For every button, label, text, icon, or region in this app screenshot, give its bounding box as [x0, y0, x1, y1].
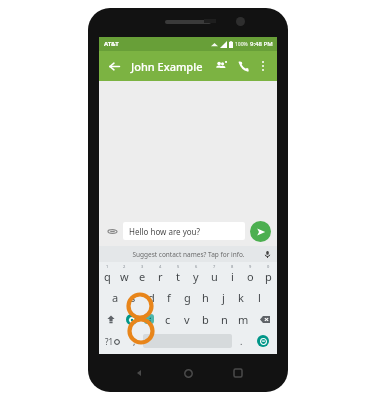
button[interactable]: Enter [249, 330, 277, 352]
button[interactable]: Voice input [262, 249, 272, 259]
button[interactable]: 7 [205, 262, 223, 286]
button[interactable]: 0 [259, 262, 277, 286]
button[interactable]: More options [255, 58, 271, 74]
staticText: 2 [123, 264, 126, 269]
staticText: y [193, 269, 199, 284]
staticText: 3 [141, 264, 144, 269]
button[interactable]: h [196, 286, 214, 308]
staticText: f [167, 290, 171, 305]
staticText: 9 [249, 264, 252, 269]
button[interactable]: m [234, 308, 253, 330]
staticText: o [247, 269, 254, 284]
staticText: Hello how are you? [129, 226, 201, 237]
staticText: k [238, 290, 244, 305]
staticText: d [148, 290, 155, 305]
button[interactable]: Symbols [99, 330, 126, 352]
staticText: e [139, 269, 146, 284]
staticText: 9:48 PM [250, 40, 273, 48]
staticText: n [221, 312, 228, 327]
staticText: p [265, 269, 272, 284]
staticText: , [133, 335, 136, 347]
button[interactable]: 9 [241, 262, 259, 286]
staticText: h [202, 290, 209, 305]
staticText: a [112, 290, 119, 305]
button[interactable]: 3 [133, 262, 151, 286]
staticText: 8 [231, 264, 234, 269]
staticText: 5 [177, 264, 180, 269]
staticText: 6 [195, 264, 198, 269]
staticText: 100% [235, 41, 248, 48]
button[interactable]: Attach [105, 224, 119, 238]
staticText: v [184, 312, 190, 327]
button[interactable]: 1 [99, 262, 116, 286]
staticText: g [184, 290, 191, 305]
button[interactable]: Space [143, 334, 232, 348]
staticText: 1 [106, 264, 109, 269]
staticText: w [120, 269, 129, 284]
button[interactable]: Send [250, 221, 271, 242]
button[interactable]: d [142, 286, 160, 308]
staticText: ?1 [105, 336, 114, 347]
staticText: q [104, 269, 111, 284]
staticText: . [240, 335, 243, 347]
button[interactable]: , [126, 330, 142, 352]
button[interactable]: 6 [187, 262, 205, 286]
staticText: u [211, 269, 218, 284]
staticText: t [176, 269, 180, 284]
button[interactable]: j [214, 286, 232, 308]
staticText: c [165, 312, 171, 327]
staticText: s [130, 290, 136, 305]
button[interactable]: k [232, 286, 250, 308]
staticText: John Example [131, 59, 212, 74]
button[interactable]: Shift [99, 308, 122, 330]
staticText: j [222, 290, 225, 305]
button[interactable]: 4 [151, 262, 169, 286]
button[interactable]: 5 [169, 262, 187, 286]
button[interactable]: Keyboard settings [122, 308, 140, 330]
staticText: 7 [213, 264, 216, 269]
button[interactable]: b [196, 308, 215, 330]
button[interactable]: Switch keyboard [140, 308, 158, 330]
button[interactable]: 8 [223, 262, 241, 286]
staticText: AT&T [104, 40, 119, 48]
staticText: m [238, 312, 249, 327]
staticText: Suggest contact names? Tap for info. [132, 250, 245, 259]
staticText: 0 [267, 264, 270, 269]
staticText: b [202, 312, 209, 327]
button[interactable]: Backspace [253, 308, 277, 330]
button[interactable]: 2 [116, 262, 133, 286]
button[interactable]: Home [178, 363, 198, 383]
button[interactable]: c [158, 308, 177, 330]
button[interactable]: Add people [212, 57, 230, 75]
button[interactable]: Hello how are you? [123, 222, 245, 240]
button[interactable]: a [107, 286, 124, 308]
button[interactable]: l [250, 286, 268, 308]
staticText: l [258, 290, 261, 305]
button[interactable]: g [178, 286, 196, 308]
staticText: i [231, 269, 234, 284]
button[interactable]: v [177, 308, 196, 330]
button[interactable]: Call [234, 57, 252, 75]
button[interactable]: Recents [228, 363, 248, 383]
staticText: r [158, 269, 163, 284]
button[interactable]: Back [105, 57, 123, 75]
button[interactable]: Back [129, 363, 149, 383]
staticText: 4 [159, 264, 162, 269]
button[interactable]: n [215, 308, 234, 330]
button[interactable]: s [124, 286, 142, 308]
button[interactable]: . [233, 330, 249, 352]
button[interactable]: f [160, 286, 178, 308]
